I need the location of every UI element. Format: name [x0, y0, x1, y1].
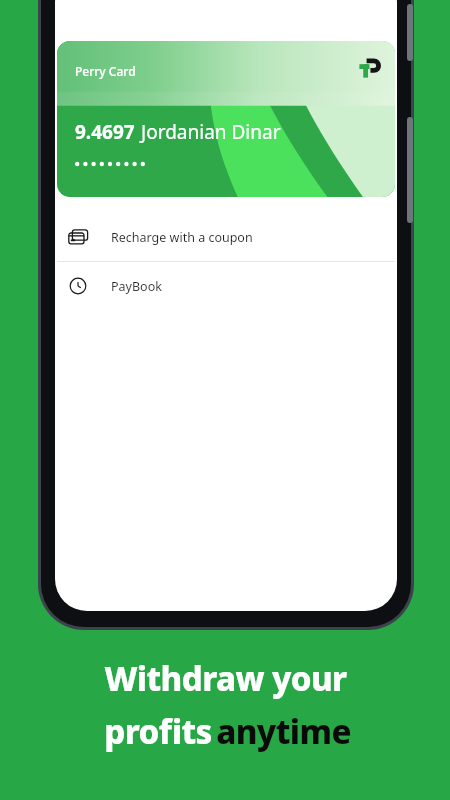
staticText: profits — [100, 709, 216, 754]
staticText: Perry Card — [75, 63, 136, 79]
staticText: Jordanian Dinar — [141, 119, 281, 145]
staticText: PayBook — [111, 278, 162, 295]
staticText: Recharge with a coupon — [111, 229, 253, 246]
button[interactable]: Recharge with a coupon — [55, 213, 397, 261]
staticText: anytime — [216, 709, 351, 754]
button[interactable]: PayBook — [55, 262, 397, 310]
staticText: 9.4697 — [75, 119, 135, 145]
button[interactable]: Perry Card — [57, 41, 395, 197]
other: Perry logo — [357, 57, 381, 81]
staticText: Withdraw your — [104, 656, 347, 701]
